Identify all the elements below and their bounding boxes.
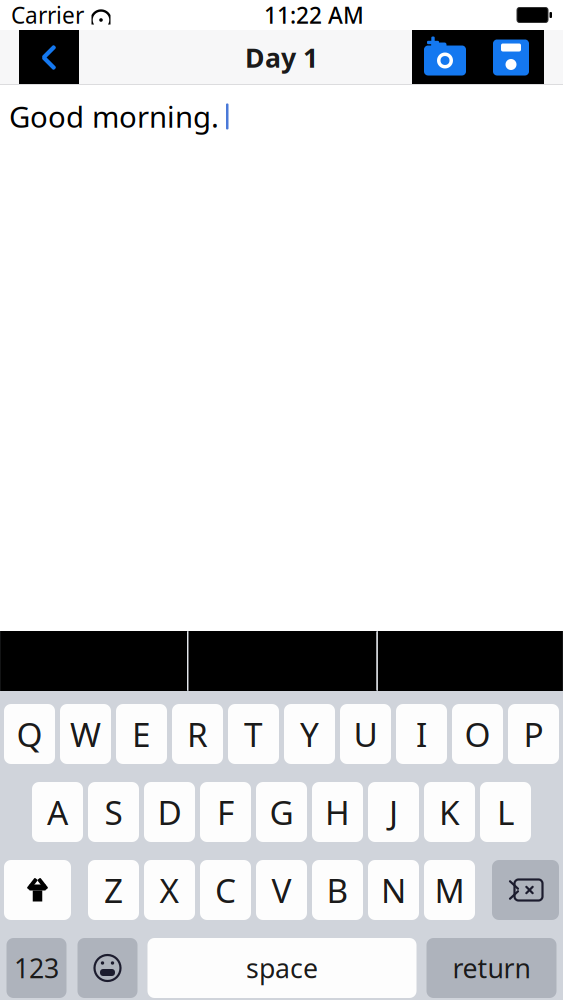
staticText: F bbox=[217, 790, 234, 834]
button[interactable]: V bbox=[256, 860, 307, 920]
button[interactable]: Add Photo bbox=[412, 30, 478, 85]
staticText: D bbox=[157, 790, 181, 834]
button[interactable]: N bbox=[368, 860, 419, 920]
staticText: K bbox=[439, 790, 460, 834]
button[interactable]: I bbox=[396, 704, 447, 764]
button[interactable]: J bbox=[368, 782, 419, 842]
button[interactable]: D bbox=[144, 782, 195, 842]
button[interactable]: F bbox=[200, 782, 251, 842]
staticText: W bbox=[70, 712, 101, 756]
button[interactable]: Delete bbox=[492, 860, 559, 920]
staticText: E bbox=[132, 712, 151, 756]
button[interactable]: M bbox=[424, 860, 475, 920]
button[interactable]: C bbox=[200, 860, 251, 920]
button[interactable]: B bbox=[312, 860, 363, 920]
button[interactable]: Z bbox=[88, 860, 139, 920]
staticText: T bbox=[244, 712, 263, 756]
button[interactable]: space bbox=[147, 938, 416, 998]
button[interactable]: R bbox=[172, 704, 223, 764]
staticText: M bbox=[434, 868, 464, 912]
button[interactable]: O bbox=[452, 704, 503, 764]
button[interactable]: K bbox=[424, 782, 475, 842]
staticText: Q bbox=[16, 712, 42, 756]
staticText: X bbox=[159, 868, 179, 912]
button[interactable]: T bbox=[228, 704, 279, 764]
staticText: U bbox=[353, 712, 377, 756]
staticText: C bbox=[215, 868, 236, 912]
staticText: Carrier bbox=[11, 0, 84, 30]
button[interactable]: return bbox=[426, 938, 556, 998]
button[interactable]: Emoji bbox=[77, 938, 137, 998]
staticText: I bbox=[416, 712, 427, 756]
button[interactable]: Back bbox=[19, 30, 79, 85]
staticText: Z bbox=[104, 868, 123, 912]
button[interactable]: 123 bbox=[6, 938, 66, 998]
button[interactable]: Q bbox=[4, 704, 55, 764]
staticText: A bbox=[47, 790, 68, 834]
staticText: J bbox=[389, 790, 398, 834]
staticText: O bbox=[464, 712, 490, 756]
button[interactable]: U bbox=[340, 704, 391, 764]
staticText: B bbox=[326, 868, 348, 912]
button[interactable]: X bbox=[144, 860, 195, 920]
staticText: G bbox=[269, 790, 293, 834]
button[interactable]: P bbox=[508, 704, 559, 764]
staticText: H bbox=[325, 790, 350, 834]
button[interactable]: Shift bbox=[4, 860, 71, 920]
staticText: Good morning. bbox=[9, 97, 219, 136]
button[interactable]: Suggestion 2 bbox=[188, 631, 376, 691]
staticText: V bbox=[271, 868, 291, 912]
button[interactable]: H bbox=[312, 782, 363, 842]
staticText: N bbox=[381, 868, 406, 912]
staticText: S bbox=[104, 790, 122, 834]
staticText: Day 1 bbox=[245, 40, 318, 75]
staticText: 123 bbox=[14, 950, 59, 986]
button[interactable]: G bbox=[256, 782, 307, 842]
button[interactable]: L bbox=[480, 782, 531, 842]
button[interactable]: Y bbox=[284, 704, 335, 764]
staticText: L bbox=[497, 790, 514, 834]
button[interactable]: Save bbox=[478, 30, 544, 85]
button[interactable]: S bbox=[88, 782, 139, 842]
staticText: return bbox=[452, 950, 530, 986]
button[interactable]: A bbox=[32, 782, 83, 842]
button[interactable]: W bbox=[60, 704, 111, 764]
staticText: P bbox=[523, 712, 543, 756]
staticText: Y bbox=[300, 712, 319, 756]
staticText: space bbox=[246, 950, 318, 986]
button[interactable]: E bbox=[116, 704, 167, 764]
staticText: 11:22 AM bbox=[264, 0, 364, 30]
staticText: R bbox=[187, 712, 208, 756]
